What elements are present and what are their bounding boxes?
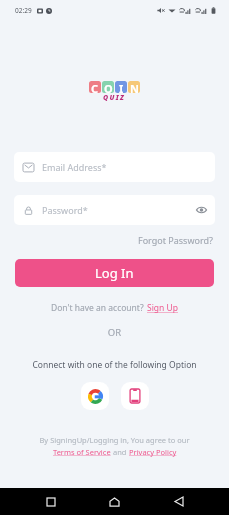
staticText: Log In <box>95 264 134 282</box>
button[interactable]: Sign in with Google <box>81 382 109 410</box>
button[interactable]: Terms of Service <box>53 447 111 457</box>
staticText: QUIZ <box>103 93 126 103</box>
staticText: O <box>104 81 113 93</box>
staticText: Password* <box>42 204 88 216</box>
staticText: and <box>111 447 129 457</box>
staticText: N <box>130 81 139 93</box>
staticText: Don't have an account? <box>51 302 144 314</box>
staticText: C <box>91 81 99 93</box>
staticText: By SigningUp/Logging in, You agree to ou… <box>0 435 229 445</box>
staticText: OR <box>0 326 229 339</box>
staticText: Email Address* <box>42 161 107 173</box>
button[interactable]: Show password <box>195 204 207 216</box>
staticText: 02:29 <box>15 6 32 15</box>
button[interactable]: Forgot Password? <box>138 234 213 246</box>
button[interactable]: Password* <box>14 195 215 225</box>
button[interactable]: Recents <box>38 488 63 515</box>
button[interactable]: Sign Up <box>147 302 178 314</box>
button[interactable]: Home <box>102 488 127 515</box>
button[interactable]: Privacy Policy <box>129 447 177 457</box>
button[interactable]: Email Address* <box>14 152 215 182</box>
button[interactable]: Log In <box>15 259 214 287</box>
button[interactable]: Sign in with phone <box>121 382 149 410</box>
staticText: Connect with one of the following Option <box>0 359 229 371</box>
button[interactable]: Back <box>166 488 191 515</box>
staticText: I <box>119 81 124 93</box>
